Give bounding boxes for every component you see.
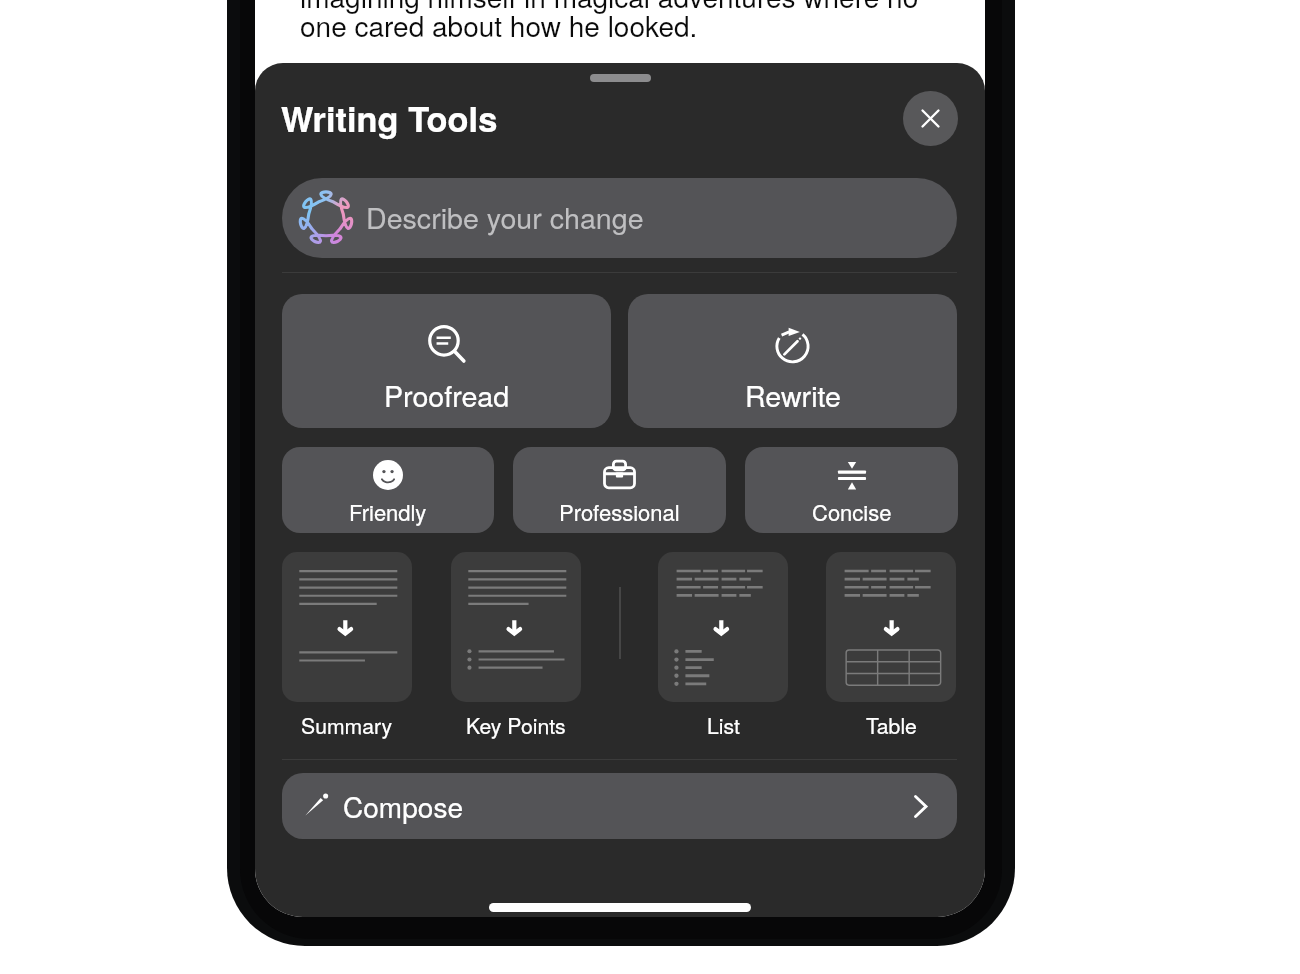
staticText: Table xyxy=(866,710,917,740)
button[interactable]: Summary xyxy=(282,552,412,740)
staticText: Proofread xyxy=(384,374,510,415)
button[interactable]: Describe your change xyxy=(282,178,957,258)
staticText: Compose xyxy=(343,786,463,826)
staticText: Concise xyxy=(812,496,892,528)
staticText: List xyxy=(707,710,740,740)
button[interactable]: Table xyxy=(826,552,956,740)
button[interactable]: List xyxy=(658,552,788,740)
button[interactable]: Professional xyxy=(513,447,726,533)
button[interactable]: Rewrite xyxy=(628,294,957,428)
button[interactable]: Close xyxy=(903,91,958,146)
staticText: one cared about how he looked. xyxy=(300,5,698,45)
staticText: Professional xyxy=(559,496,680,528)
staticText: imagining himself in magical adventures … xyxy=(300,0,919,16)
staticText: Writing Tools xyxy=(281,93,498,142)
button[interactable]: Key Points xyxy=(451,552,581,740)
button[interactable]: Friendly xyxy=(282,447,494,533)
button[interactable]: Concise xyxy=(745,447,958,533)
staticText: Key Points xyxy=(466,710,566,740)
staticText: Describe your change xyxy=(366,196,644,237)
button[interactable]: Proofread xyxy=(282,294,611,428)
staticText: Friendly xyxy=(349,496,427,528)
button[interactable]: Compose xyxy=(282,773,957,839)
staticText: Summary xyxy=(301,710,393,740)
staticText: Rewrite xyxy=(745,374,841,415)
